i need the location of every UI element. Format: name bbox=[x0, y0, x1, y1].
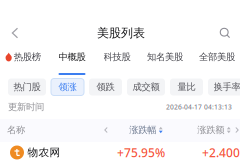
staticText: 名称 bbox=[7, 124, 25, 136]
staticText: 热门股 bbox=[13, 81, 40, 93]
button[interactable]: 中概股 bbox=[44, 51, 100, 75]
staticText: +2.400 bbox=[202, 144, 240, 160]
button[interactable]: 涨跌额 bbox=[186, 120, 240, 140]
button[interactable]: 全部美股 bbox=[189, 51, 240, 75]
staticText: 更新时间 bbox=[8, 101, 44, 113]
button[interactable]: 成交额 bbox=[127, 78, 165, 95]
staticText: 美股列表 bbox=[97, 26, 145, 40]
staticText: 2026-04-17 04:13:13 bbox=[166, 103, 232, 111]
button[interactable]: 领跌 bbox=[89, 78, 122, 95]
button[interactable]: 量比 bbox=[170, 78, 203, 95]
button[interactable]: 领涨 bbox=[51, 78, 84, 95]
staticText: 成交额 bbox=[132, 81, 159, 93]
staticText: 物农网 bbox=[27, 146, 60, 159]
staticText: 涨跌额 bbox=[197, 124, 224, 136]
staticText: 涨跌幅 bbox=[129, 124, 156, 136]
staticText: 知名美股 bbox=[147, 51, 183, 63]
staticText: 领跌 bbox=[96, 81, 114, 93]
button[interactable]: 热股榜 bbox=[0, 51, 51, 75]
button[interactable]: 知名美股 bbox=[137, 51, 193, 75]
staticText: 换手率 bbox=[213, 81, 240, 93]
staticText: 中概股 bbox=[58, 51, 85, 63]
button[interactable]: 换手率 bbox=[208, 78, 240, 95]
button[interactable]: 物农网 bbox=[0, 142, 240, 160]
staticText: 全部美股 bbox=[199, 51, 235, 63]
button[interactable]: Back bbox=[2, 20, 28, 46]
staticText: 热股榜 bbox=[14, 51, 41, 63]
staticText: +75.95% bbox=[117, 144, 165, 160]
button[interactable]: Search bbox=[212, 20, 238, 46]
button[interactable]: 科技股 bbox=[89, 51, 145, 75]
staticText: 量比 bbox=[177, 81, 195, 93]
staticText: 领涨 bbox=[58, 81, 76, 93]
staticText: 科技股 bbox=[103, 51, 130, 63]
button[interactable]: 涨跌幅 bbox=[118, 120, 174, 140]
button[interactable]: 热门股 bbox=[8, 78, 46, 95]
